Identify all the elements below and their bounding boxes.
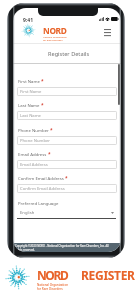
staticText: Copyright ©2020 NORD - National Organiza…: [15, 244, 109, 251]
staticText: *: [41, 78, 44, 85]
staticText: Preferred Language: [18, 200, 59, 206]
staticText: Confirm Email Address: [20, 186, 65, 192]
staticText: National Organization for Rare Disorders: [43, 36, 67, 42]
staticText: English: [20, 210, 35, 216]
staticText: National Organization for Rare Disorders: [37, 283, 69, 290]
button[interactable]: English: [17, 208, 116, 219]
staticText: *: [65, 175, 68, 182]
staticText: First Name: [20, 89, 42, 95]
staticText: NORD: [43, 25, 67, 36]
staticText: Phone Number: [20, 138, 51, 144]
staticText: *: [48, 151, 51, 158]
staticText: First Name: [18, 78, 40, 84]
button[interactable]: Phone Number: [17, 136, 117, 145]
button[interactable]: Confirm Email Address: [17, 184, 117, 193]
staticText: Last Name: [18, 102, 40, 108]
staticText: 9:41: [23, 17, 33, 24]
staticText: REGISTER: [81, 267, 135, 283]
button[interactable]: Email Address: [17, 160, 117, 169]
staticText: Register Details: [48, 50, 90, 58]
button[interactable]: Menu: [100, 23, 114, 41]
staticText: Email Address: [20, 162, 48, 168]
staticText: Email Address: [18, 151, 47, 157]
staticText: *: [50, 127, 53, 134]
staticText: Phone Number: [18, 127, 49, 133]
staticText: NORD: [37, 267, 68, 283]
staticText: Confirm Email Address: [18, 175, 64, 181]
button[interactable]: Last Name: [17, 111, 117, 120]
staticText: *: [41, 102, 44, 109]
staticText: Last Name: [20, 113, 41, 119]
button[interactable]: First Name: [17, 87, 117, 96]
